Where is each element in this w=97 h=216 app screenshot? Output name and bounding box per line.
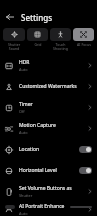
staticText: Settings <box>21 12 53 23</box>
button[interactable]: Back <box>3 10 17 24</box>
button[interactable]: Home <box>70 206 92 208</box>
staticText: Auto <box>19 67 28 72</box>
staticText: AI Portrait Enhance <box>19 203 65 210</box>
button[interactable]: Horizontal Level <box>0 160 97 181</box>
button[interactable]: Motion Capture <box>0 118 97 139</box>
staticText: Off <box>19 109 25 114</box>
staticText: Auto <box>19 130 28 135</box>
button[interactable]: HDR <box>0 55 97 76</box>
staticText: HDR <box>19 59 30 66</box>
staticText: Location <box>19 146 40 153</box>
staticText: Horizontal Level <box>19 167 57 174</box>
staticText: Shutter <box>19 193 33 198</box>
button[interactable]: Recents <box>5 205 15 209</box>
button[interactable]: Location toggle <box>79 146 92 153</box>
button[interactable]: Touch Shooting <box>50 28 71 51</box>
staticText: Shutter Sound <box>3 42 25 51</box>
button[interactable]: Timer <box>0 97 97 118</box>
button[interactable]: AI Focus <box>73 28 94 47</box>
staticText: Auto <box>19 211 28 216</box>
button[interactable]: Grid <box>27 28 48 47</box>
staticText: Grid <box>34 42 42 47</box>
button[interactable]: Set Volume Buttons as <box>0 181 97 202</box>
staticText: AI Focus <box>77 42 91 47</box>
button[interactable]: AI Portrait Enhance <box>0 202 97 216</box>
button[interactable]: Horizontal Level toggle <box>79 167 92 174</box>
staticText: Customized Watermarks <box>19 83 77 90</box>
staticText: Set Volume Buttons as <box>19 185 72 192</box>
button[interactable]: Shutter Sound <box>3 28 25 51</box>
staticText: Timer <box>19 101 33 108</box>
button[interactable]: Customized Watermarks <box>0 76 97 97</box>
button[interactable]: Location <box>0 139 97 160</box>
staticText: Motion Capture <box>19 122 56 129</box>
staticText: Touch Shooting <box>53 42 68 51</box>
